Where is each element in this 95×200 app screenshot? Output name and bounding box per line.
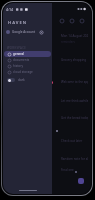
button[interactable]: dark	[3, 76, 52, 84]
button[interactable]: Toolbar action 0	[58, 17, 66, 25]
button[interactable]: documents	[4, 57, 51, 63]
staticText: general	[13, 52, 25, 56]
staticText: dark	[18, 78, 25, 82]
button[interactable]: Check out later	[3, 139, 91, 147]
button[interactable]: Toolbar action 1	[68, 17, 76, 25]
button[interactable]: Mon 14 August 2023	[3, 34, 91, 46]
button[interactable]: general	[4, 51, 51, 57]
staticText: Get the bread today	[61, 116, 88, 120]
button[interactable]: Welcome to the app	[3, 80, 91, 88]
staticText: HAVEN	[8, 20, 28, 26]
button[interactable]: Grocery shopping	[3, 58, 91, 66]
button[interactable]: Google Account	[3, 27, 52, 37]
staticText: Check out later	[61, 139, 83, 143]
staticText: Mon 14 August 2023	[61, 34, 88, 38]
button[interactable]: Settings	[37, 28, 45, 36]
button[interactable]: Toolbar action 2	[78, 17, 86, 25]
button[interactable]: Final one	[3, 168, 91, 176]
staticText: documents	[13, 58, 30, 62]
staticText: Grocery shopping	[61, 58, 87, 62]
staticText: Random note for all	[61, 157, 88, 161]
button[interactable]: Get the bread today	[3, 116, 91, 124]
staticText: Let me think awhile	[61, 99, 88, 103]
button[interactable]: Random note for all	[3, 157, 91, 165]
staticText: Google Account	[12, 30, 36, 34]
button[interactable]: history	[4, 63, 51, 69]
button[interactable]: cloud storage	[4, 69, 51, 75]
staticText: Final one	[61, 168, 74, 172]
staticText: Welcome to the app	[61, 80, 88, 84]
staticText: history	[13, 64, 24, 68]
staticText: cloud storage	[13, 70, 33, 74]
button[interactable]: Let me think awhile	[3, 99, 91, 107]
button[interactable]: Create note	[78, 178, 84, 184]
staticText: reminders	[61, 40, 75, 44]
staticText: WORKSPACE	[7, 46, 27, 50]
staticText: 4:14	[6, 7, 14, 12]
